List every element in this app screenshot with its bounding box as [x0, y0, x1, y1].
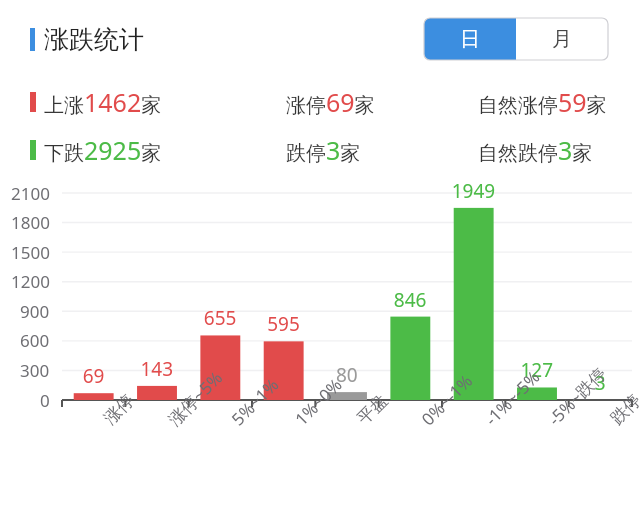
staticText: 自然涨停59家: [478, 85, 607, 119]
staticText: 涨停69家: [286, 85, 375, 119]
button[interactable]: 自然涨停59家: [478, 85, 607, 119]
button[interactable]: 月: [516, 18, 608, 60]
button[interactable]: 涨停69家: [286, 85, 375, 119]
button[interactable]: 日: [424, 18, 516, 60]
staticText: 月: [552, 27, 572, 52]
button[interactable]: 自然跌停3家: [478, 133, 593, 167]
staticText: 跌停3家: [286, 133, 361, 167]
staticText: 涨跌统计: [44, 24, 144, 55]
staticText: 日: [460, 27, 480, 52]
button[interactable]: 下跌2925家: [30, 133, 162, 167]
button[interactable]: 上涨1462家: [30, 85, 162, 119]
staticText: 上涨1462家: [44, 85, 162, 119]
staticText: 下跌2925家: [44, 133, 162, 167]
staticText: 自然跌停3家: [478, 133, 593, 167]
button[interactable]: 涨跌统计: [30, 24, 144, 55]
button[interactable]: 跌停3家: [286, 133, 361, 167]
